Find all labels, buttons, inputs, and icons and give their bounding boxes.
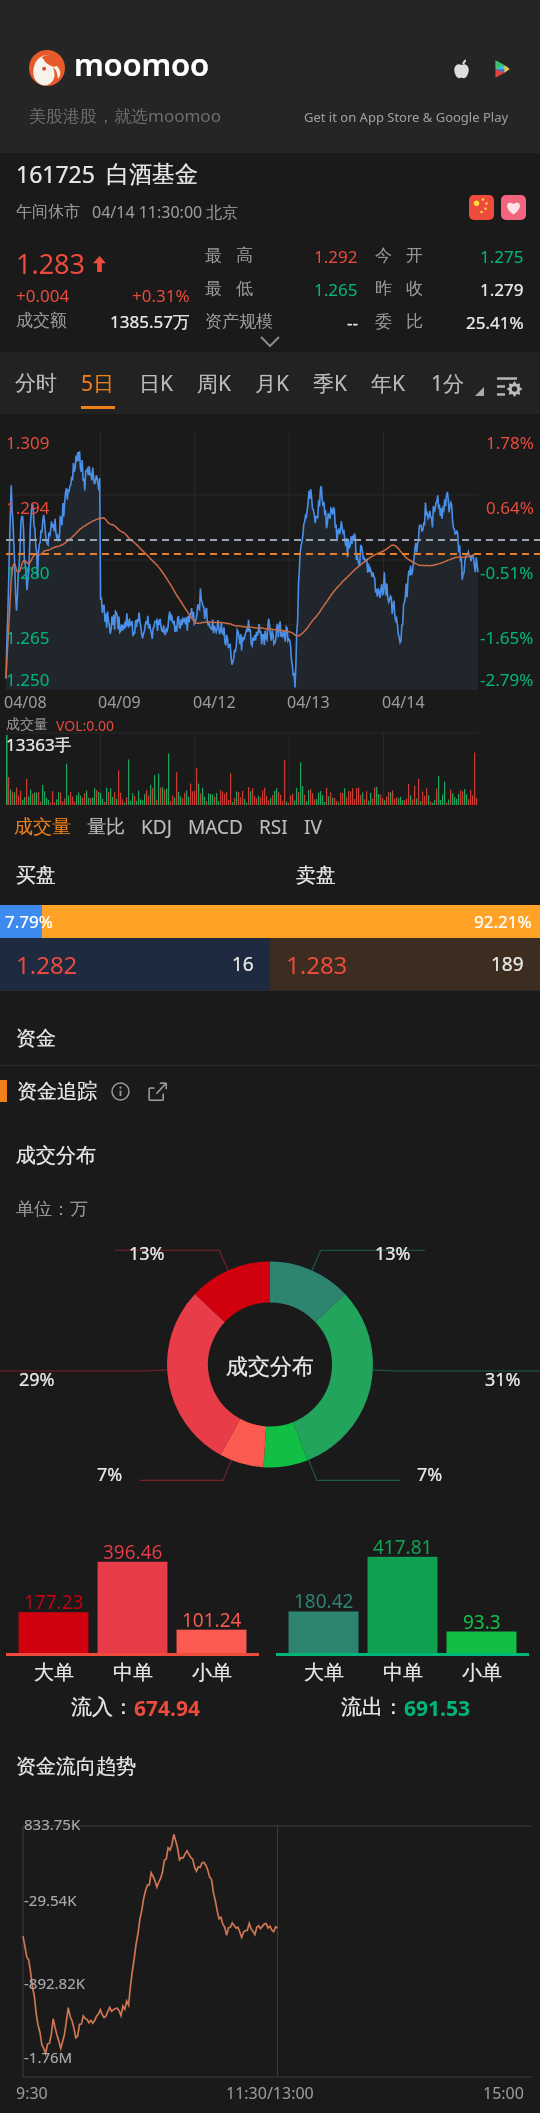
- staticText: 大单: [304, 1660, 344, 1685]
- staticText: 今: [375, 245, 392, 266]
- staticText: 161725: [16, 158, 95, 189]
- staticText: 93.3: [463, 1609, 501, 1635]
- button[interactable]: MACD: [188, 808, 259, 845]
- button[interactable]: 5日: [69, 352, 127, 414]
- staticText: 7%: [97, 1462, 123, 1487]
- staticText: 1分: [431, 369, 465, 398]
- button[interactable]: RSI: [259, 808, 304, 845]
- button[interactable]: 月K: [243, 352, 301, 414]
- staticText: 成交分布: [16, 1143, 96, 1168]
- staticText: 流入：: [71, 1694, 134, 1720]
- staticText: 31%: [485, 1367, 521, 1392]
- staticText: 委: [375, 311, 392, 332]
- staticText: 资产规模: [205, 311, 273, 332]
- staticText: 中单: [113, 1660, 153, 1685]
- staticText: Get it on App Store & Google Play: [304, 108, 509, 126]
- button[interactable]: Favourite: [501, 195, 526, 220]
- staticText: 13363手: [6, 733, 72, 756]
- staticText: 资金流向趋势: [16, 1754, 136, 1779]
- staticText: 04/13: [287, 691, 330, 710]
- staticText: 396.46: [103, 1539, 163, 1565]
- staticText: 9:30: [16, 2082, 48, 2104]
- staticText: 1.292: [314, 245, 358, 268]
- button[interactable]: KDJ: [141, 808, 188, 845]
- staticText: 1.294: [6, 496, 50, 519]
- other: Share: [148, 1082, 167, 1101]
- staticText: 1.250: [6, 668, 50, 691]
- button[interactable]: App Store: [452, 59, 471, 79]
- staticText: 180.42: [294, 1588, 354, 1614]
- staticText: 7%: [417, 1462, 443, 1487]
- staticText: 量比: [87, 815, 125, 839]
- staticText: MACD: [188, 814, 243, 840]
- staticText: 29%: [19, 1367, 55, 1392]
- button[interactable]: 年K: [359, 352, 417, 414]
- staticText: 1.78%: [486, 431, 534, 454]
- staticText: 1.309: [6, 431, 50, 454]
- button[interactable]: 周K: [185, 352, 243, 414]
- staticText: 高: [236, 245, 253, 266]
- staticText: 101.24: [182, 1607, 242, 1633]
- button[interactable]: 1分: [417, 352, 465, 414]
- staticText: 白酒基金: [106, 160, 198, 189]
- staticText: 1385.57万: [110, 310, 190, 333]
- staticText: 1.280: [6, 561, 50, 584]
- button[interactable]: 日K: [127, 352, 185, 414]
- staticText: 5日: [81, 369, 115, 398]
- staticText: 大单: [34, 1660, 74, 1685]
- staticText: 04/14 11:30:00 北京: [92, 201, 239, 223]
- staticText: 周K: [197, 369, 231, 398]
- staticText: 04/14: [382, 691, 425, 710]
- staticText: 7.79%: [5, 910, 53, 933]
- staticText: moomoo: [74, 43, 209, 85]
- staticText: 13%: [129, 1241, 165, 1266]
- staticText: 177.23: [24, 1589, 84, 1615]
- staticText: 04/08: [4, 691, 47, 710]
- staticText: 季K: [313, 369, 347, 398]
- staticText: 成交分布: [226, 1353, 314, 1381]
- staticText: 92.21%: [474, 910, 532, 933]
- button[interactable]: 1.283: [270, 938, 540, 990]
- staticText: 单位：万: [16, 1198, 88, 1221]
- staticText: 分时: [15, 370, 57, 396]
- staticText: 04/12: [193, 691, 236, 710]
- staticText: 1.275: [480, 245, 524, 268]
- staticText: IV: [304, 814, 322, 840]
- staticText: -0.51%: [480, 561, 534, 584]
- staticText: 13%: [375, 1241, 411, 1266]
- staticText: +0.31%: [132, 284, 190, 307]
- staticText: 资金: [16, 1026, 56, 1051]
- staticText: 1.265: [314, 278, 358, 301]
- staticText: 月K: [255, 369, 289, 398]
- button[interactable]: Google Play: [492, 59, 512, 79]
- staticText: RSI: [259, 814, 288, 840]
- button[interactable]: 量比: [87, 808, 141, 845]
- staticText: -1.76M: [24, 2047, 73, 2067]
- staticText: 低: [236, 278, 253, 299]
- staticText: 买盘: [16, 863, 56, 888]
- staticText: 04/09: [98, 691, 141, 710]
- staticText: 691.53: [404, 1694, 470, 1723]
- staticText: 16: [232, 951, 254, 977]
- staticText: 昨: [375, 278, 392, 299]
- staticText: -892.82K: [24, 1973, 86, 1993]
- button[interactable]: 季K: [301, 352, 359, 414]
- staticText: 674.94: [134, 1694, 200, 1723]
- button[interactable]: IV: [304, 808, 338, 845]
- staticText: 成交量: [6, 716, 48, 734]
- staticText: 收: [406, 278, 423, 299]
- button[interactable]: 1.282: [0, 938, 270, 990]
- staticText: 0.64%: [486, 496, 534, 519]
- staticText: 小单: [462, 1660, 502, 1685]
- button[interactable]: 资金追踪: [0, 1070, 540, 1112]
- staticText: 年K: [371, 369, 405, 398]
- button[interactable]: Chart settings: [488, 352, 530, 414]
- staticText: 417.81: [373, 1534, 433, 1560]
- staticText: -1.65%: [480, 626, 534, 649]
- button[interactable]: 成交量: [14, 808, 87, 845]
- staticText: 小单: [192, 1660, 232, 1685]
- staticText: 最: [205, 245, 222, 266]
- staticText: 1.283: [286, 948, 348, 981]
- button[interactable]: 分时: [3, 352, 69, 414]
- staticText: 最: [205, 278, 222, 299]
